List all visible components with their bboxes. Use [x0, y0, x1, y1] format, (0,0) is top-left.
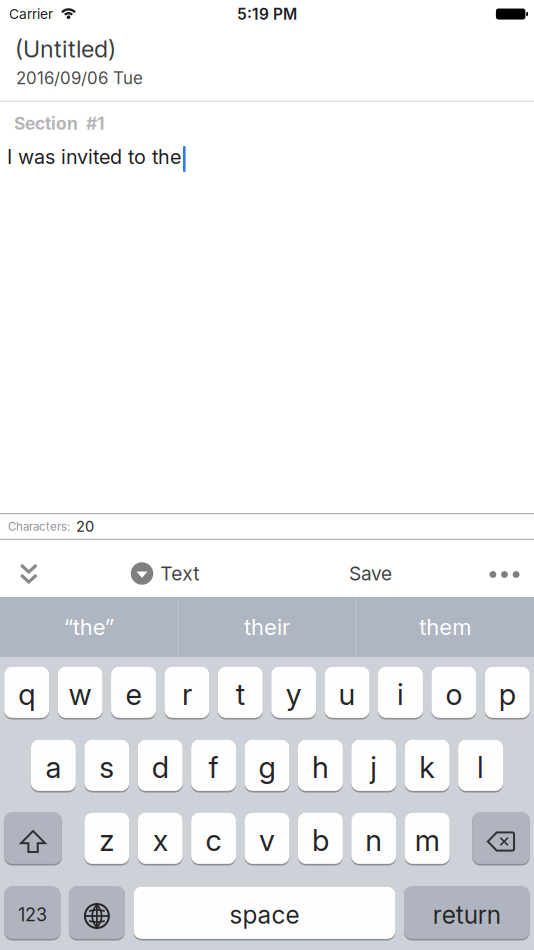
button[interactable]: r	[164, 666, 209, 719]
staticText: m	[415, 822, 440, 858]
button[interactable]: b	[298, 812, 343, 865]
staticText: e	[125, 676, 141, 712]
button[interactable]: w	[58, 666, 103, 719]
button[interactable]: c	[191, 812, 236, 865]
button[interactable]: “the”	[0, 597, 177, 657]
staticText: o	[445, 676, 462, 712]
staticText: u	[339, 676, 356, 712]
button[interactable]: s	[84, 739, 129, 792]
button[interactable]: Dismiss keyboard	[7, 548, 51, 598]
button[interactable]: f	[191, 739, 236, 792]
staticText: b	[312, 822, 329, 858]
staticText: n	[365, 822, 382, 858]
button[interactable]: z	[84, 812, 129, 865]
staticText: Save	[349, 562, 392, 585]
button[interactable]: v	[245, 812, 289, 865]
staticText: l	[477, 749, 484, 785]
staticText: space	[229, 900, 299, 930]
button[interactable]: space	[134, 886, 395, 940]
staticText: f	[209, 749, 219, 785]
staticText: 20	[76, 518, 94, 535]
button[interactable]: 123	[4, 886, 60, 940]
button[interactable]: Shift	[4, 812, 62, 865]
staticText: i	[397, 676, 404, 712]
staticText: y	[286, 676, 302, 712]
staticText: their	[244, 614, 290, 640]
staticText: z	[99, 822, 114, 858]
button[interactable]: Text style	[131, 562, 199, 585]
staticText: I was invited to the	[7, 145, 181, 169]
staticText: x	[153, 822, 168, 858]
button[interactable]: e	[111, 666, 156, 719]
button[interactable]: h	[298, 739, 343, 792]
staticText: Text	[160, 562, 199, 585]
button[interactable]: j	[351, 739, 396, 792]
staticText: Section #1	[14, 113, 104, 134]
staticText: 2016/09/06 Tue	[16, 68, 143, 88]
button[interactable]: Delete	[472, 812, 530, 865]
button[interactable]: them	[356, 597, 534, 657]
button[interactable]: l	[458, 739, 503, 792]
staticText: Characters:	[8, 520, 70, 533]
staticText: r	[182, 676, 192, 712]
staticText: return	[433, 900, 501, 930]
button[interactable]: p	[485, 666, 530, 719]
button[interactable]: Save	[349, 562, 392, 585]
button[interactable]: i	[378, 666, 423, 719]
button[interactable]: their	[178, 597, 355, 657]
button[interactable]: return	[404, 886, 530, 940]
button[interactable]: g	[245, 739, 289, 792]
staticText: k	[419, 749, 435, 785]
staticText: s	[99, 749, 114, 785]
button[interactable]: n	[351, 812, 396, 865]
staticText: w	[69, 676, 92, 712]
button[interactable]: t	[218, 666, 263, 719]
staticText: them	[419, 614, 471, 640]
button[interactable]: d	[138, 739, 183, 792]
staticText: 5:19 PM	[237, 5, 297, 23]
staticText: Carrier	[9, 6, 53, 22]
staticText: a	[45, 749, 61, 785]
staticText: h	[312, 749, 329, 785]
staticText: c	[206, 822, 222, 858]
staticText: t	[236, 676, 245, 712]
button[interactable]: q	[4, 666, 49, 719]
button[interactable]: a	[31, 739, 76, 792]
staticText: p	[499, 676, 516, 712]
staticText: d	[152, 749, 169, 785]
staticText: j	[370, 749, 377, 785]
staticText: v	[259, 822, 275, 858]
button[interactable]: u	[325, 666, 370, 719]
staticText: q	[18, 676, 35, 712]
staticText: g	[258, 749, 275, 785]
button[interactable]: o	[431, 666, 476, 719]
button[interactable]: y	[271, 666, 316, 719]
staticText: “the”	[64, 614, 114, 640]
button[interactable]: m	[405, 812, 450, 865]
button[interactable]: k	[405, 739, 450, 792]
staticText: (Untitled)	[15, 35, 116, 63]
staticText: 123	[18, 904, 47, 926]
button[interactable]: More	[489, 571, 519, 578]
button[interactable]: Next keyboard	[69, 886, 125, 940]
button[interactable]: x	[138, 812, 183, 865]
